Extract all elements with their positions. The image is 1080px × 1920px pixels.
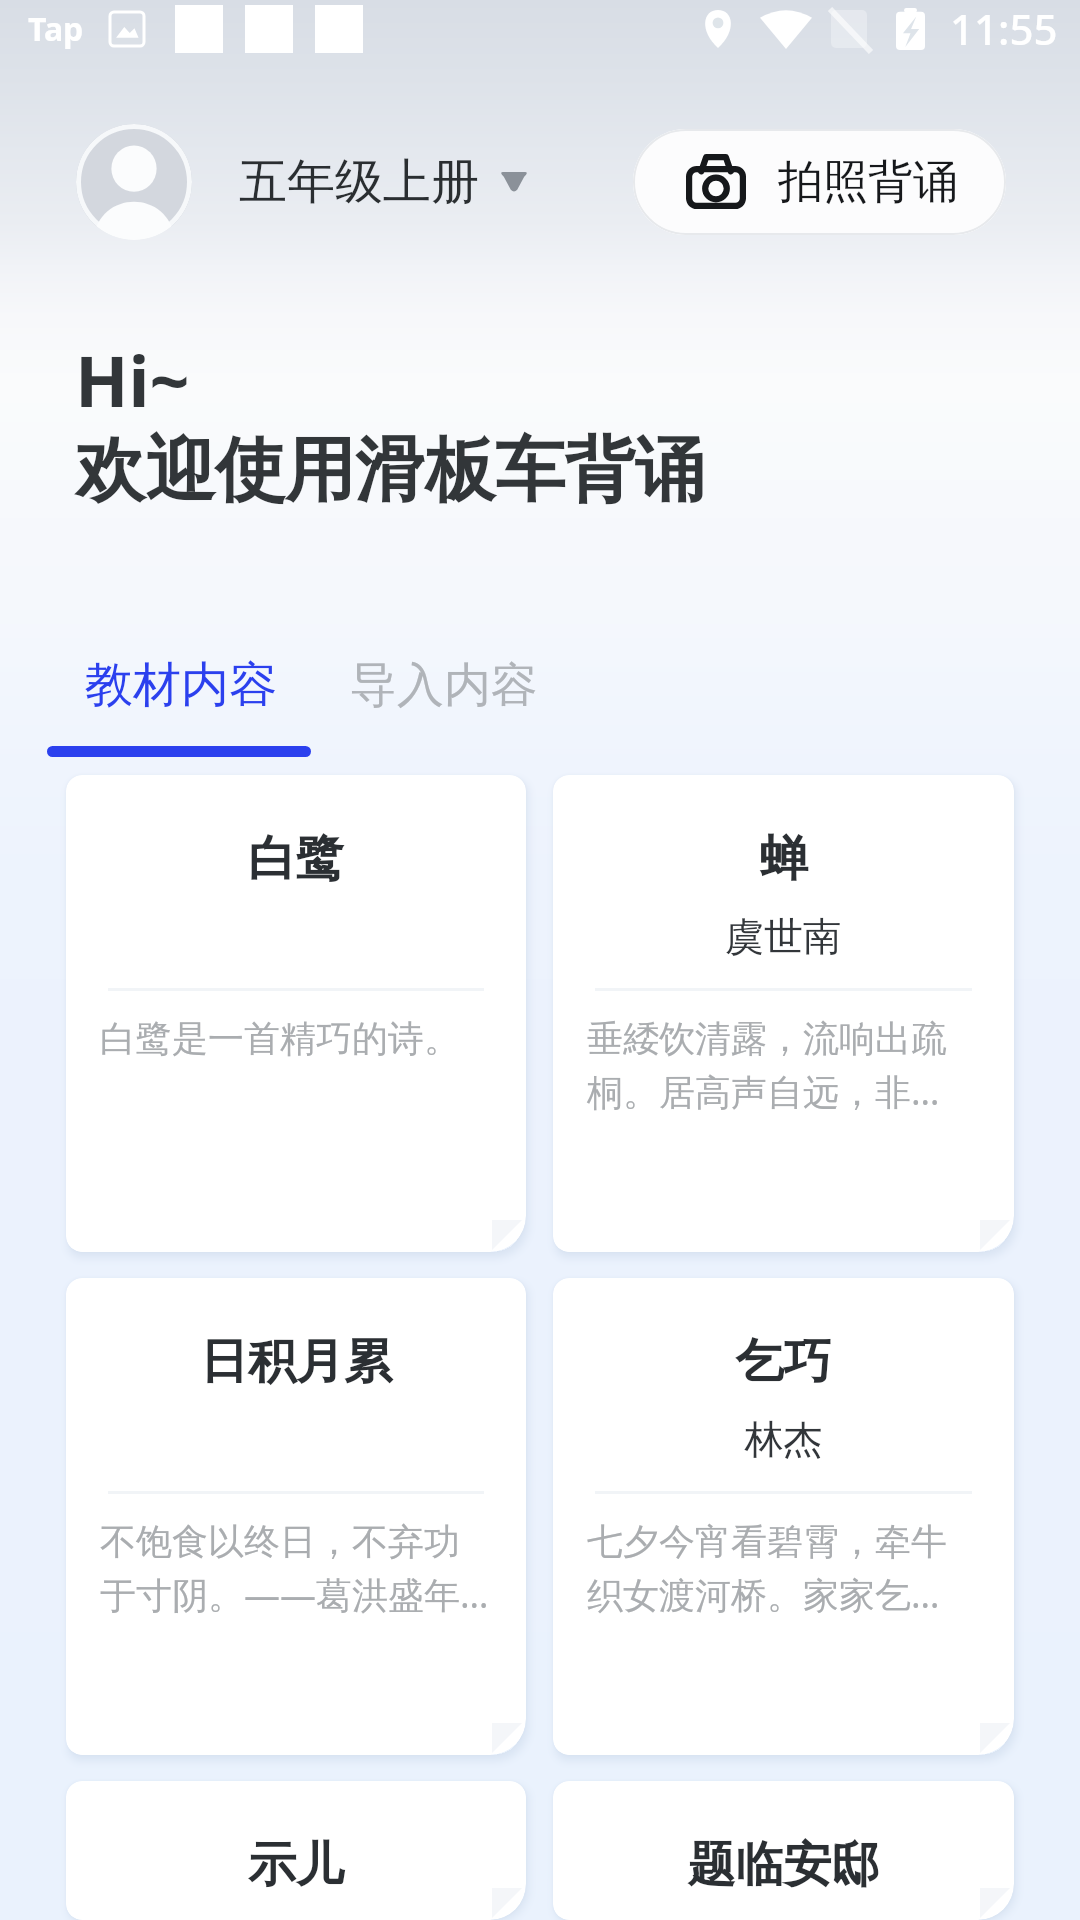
- staticText: 日积月累: [108, 1332, 484, 1392]
- staticText: 七夕今宵看碧霄，牵牛织女渡河桥。家家乞…: [587, 1519, 980, 1619]
- button[interactable]: 拍照背诵: [633, 129, 1006, 235]
- button[interactable]: 导入内容: [315, 646, 576, 725]
- staticText: 示儿: [108, 1835, 484, 1895]
- button[interactable]: 教材内容: [47, 645, 315, 725]
- button[interactable]: 示儿: [66, 1781, 526, 1920]
- button[interactable]: Profile: [76, 124, 192, 240]
- button[interactable]: 蝉: [553, 775, 1014, 1252]
- button[interactable]: 五年级上册: [229, 140, 539, 224]
- button[interactable]: 乞巧: [553, 1278, 1014, 1755]
- staticText: 垂緌饮清露，流响出疏桐。居高声自远，非…: [587, 1016, 980, 1116]
- button[interactable]: 题临安邸: [553, 1781, 1014, 1920]
- staticText: 白鹭: [108, 829, 484, 889]
- staticText: 蝉: [595, 829, 972, 889]
- staticText: 拍照背诵: [778, 154, 958, 211]
- staticText: Hi~: [75, 332, 190, 427]
- staticText: 题临安邸: [595, 1835, 972, 1895]
- staticText: 导入内容: [350, 656, 538, 715]
- staticText: 不饱食以终日，不弃功于寸阴。——葛洪盛年…: [100, 1519, 492, 1619]
- staticText: 11:55: [950, 0, 1058, 57]
- staticText: 欢迎使用滑板车背诵: [75, 427, 705, 515]
- staticText: Tap: [28, 7, 84, 51]
- staticText: 教材内容: [85, 655, 277, 715]
- staticText: 虞世南: [595, 912, 972, 961]
- button[interactable]: 日积月累: [66, 1278, 526, 1755]
- staticText: 林杰: [595, 1415, 972, 1464]
- staticText: 白鹭是一首精巧的诗。: [100, 1016, 460, 1061]
- button[interactable]: 白鹭: [66, 775, 526, 1252]
- staticText: 五年级上册: [239, 152, 479, 212]
- staticText: 乞巧: [595, 1332, 972, 1392]
